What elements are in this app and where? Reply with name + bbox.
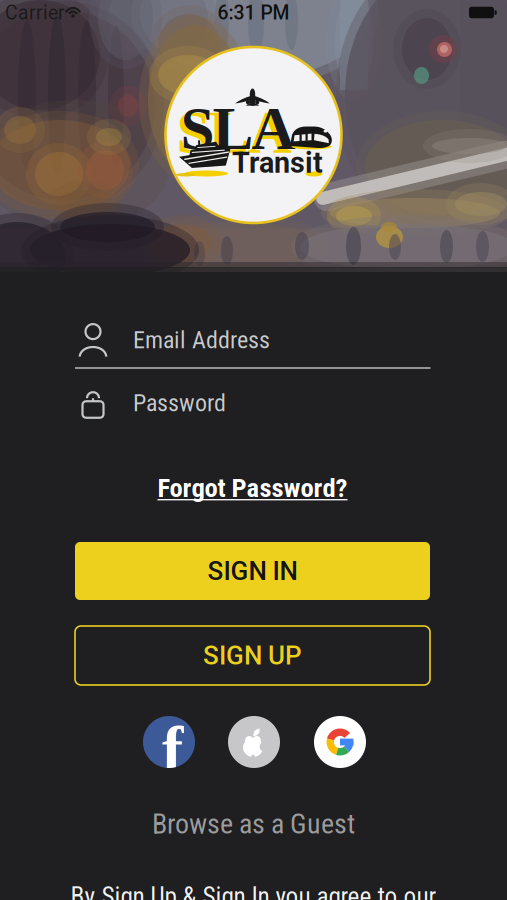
button[interactable]: Forgot Password? xyxy=(157,472,347,504)
button[interactable]: SIGN UP xyxy=(75,626,430,685)
button[interactable]: Sign in with Facebook xyxy=(143,716,195,768)
staticText: By Sign Up & Sign In you agree to our xyxy=(70,882,436,900)
button[interactable]: Email Address xyxy=(0,318,507,362)
staticText: Forgot Password? xyxy=(157,472,347,504)
staticText: 6:31 PM xyxy=(217,2,289,24)
staticText: Carrier xyxy=(5,2,65,24)
button[interactable]: SIGN IN xyxy=(75,542,430,600)
button[interactable]: Password xyxy=(0,381,507,425)
staticText: Transit xyxy=(232,146,323,180)
staticText: Browse as a Guest xyxy=(152,808,355,840)
button[interactable]: Browse as a Guest xyxy=(152,808,355,840)
staticText: f xyxy=(162,714,183,784)
button[interactable]: Sign in with Apple xyxy=(228,716,280,768)
staticText: Email Address xyxy=(133,326,270,354)
button[interactable]: Sign in with Google xyxy=(314,716,366,768)
staticText: SIGN UP xyxy=(203,640,302,671)
staticText: SIGN IN xyxy=(207,556,297,586)
staticText: SLA xyxy=(176,98,291,166)
staticText: Password xyxy=(133,389,226,417)
staticText: SLA xyxy=(180,94,295,162)
